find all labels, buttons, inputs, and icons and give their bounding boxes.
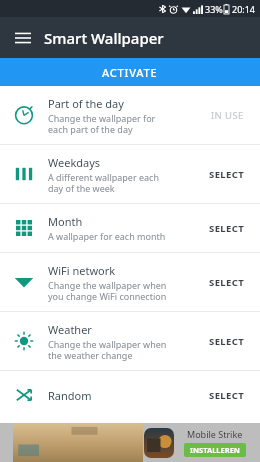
button[interactable]: Open navigation menu — [8, 23, 38, 53]
staticText: Month — [48, 214, 83, 229]
button[interactable]: Weekdays — [0, 145, 260, 203]
staticText: 20:14 — [232, 3, 256, 15]
button[interactable]: Random — [0, 371, 260, 419]
staticText: Part of the day — [48, 96, 124, 111]
button[interactable]: Part of the day — [0, 86, 260, 144]
staticText: WiFi network — [48, 263, 116, 278]
staticText: Change the wallpaper when you change WiF… — [48, 279, 167, 302]
staticText: 33% — [205, 3, 223, 15]
staticText: A wallpaper for each month — [48, 230, 166, 242]
staticText: SELECT — [209, 389, 245, 402]
staticText: ACTIVATE — [102, 65, 158, 80]
staticText: SELECT — [209, 168, 245, 181]
staticText: A different wallpaper each day of the we… — [48, 171, 160, 194]
button[interactable]: ACTIVATE — [0, 58, 260, 86]
staticText: Change the wallpaper for each part of th… — [48, 112, 156, 135]
staticText: SELECT — [209, 222, 245, 235]
staticText: Weekdays — [48, 155, 101, 170]
staticText: Smart Wallpaper — [44, 28, 164, 48]
staticText: Weather — [48, 322, 92, 337]
button[interactable]: Month — [0, 204, 260, 252]
staticText: IN USE — [211, 109, 244, 122]
staticText: SELECT — [209, 276, 245, 289]
staticText: SELECT — [209, 335, 245, 348]
button[interactable]: INSTALLEREN — [190, 445, 240, 455]
staticText: Random — [48, 388, 92, 403]
button[interactable]: Advertisement: Mobile Strike — [0, 423, 260, 462]
button[interactable]: Weather — [0, 312, 260, 370]
staticText: INSTALLEREN — [190, 445, 240, 455]
staticText: Mobile Strike — [187, 428, 243, 440]
staticText: Change the wallpaper when the weather ch… — [48, 338, 167, 361]
button[interactable]: WiFi network — [0, 253, 260, 311]
